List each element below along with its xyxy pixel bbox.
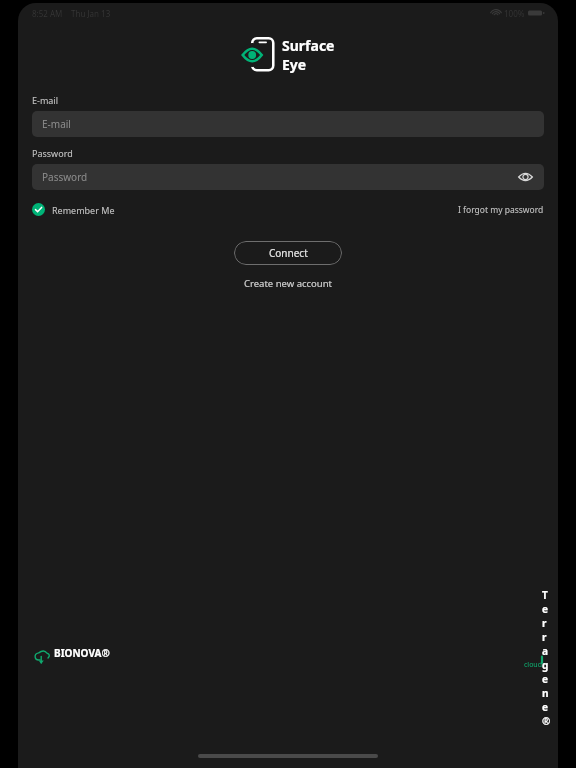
staticText: 100% — [504, 8, 525, 19]
button[interactable]: Show password — [516, 168, 534, 186]
staticText: Surface — [282, 36, 335, 55]
button[interactable]: Password — [32, 164, 544, 190]
button[interactable]: E-mail — [32, 111, 544, 137]
staticText: cloud — [54, 660, 542, 670]
staticText: 8:52 AM — [32, 8, 63, 19]
staticText: E-mail — [32, 94, 59, 106]
staticText: Connect — [269, 246, 308, 260]
button[interactable]: I forgot my password — [458, 204, 544, 216]
staticText: Password — [42, 170, 88, 184]
staticText: BIONOVA® — [54, 646, 110, 660]
staticText: I forgot my password — [458, 204, 544, 216]
staticText: Password — [32, 147, 73, 159]
staticText: Create new account — [244, 277, 333, 290]
button[interactable]: Remember Me — [32, 203, 115, 216]
staticText: Thu Jan 13 — [71, 8, 111, 19]
staticText: Eye — [282, 55, 307, 74]
staticText: Remember Me — [52, 204, 115, 216]
staticText: E-mail — [42, 117, 71, 131]
button[interactable]: Connect — [234, 241, 342, 265]
button[interactable]: Create new account — [244, 277, 333, 290]
